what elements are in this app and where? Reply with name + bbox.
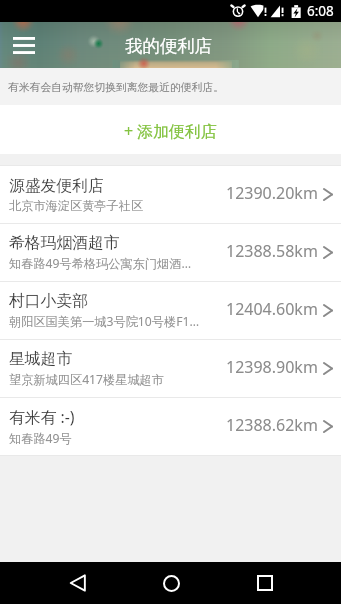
staticText: 希格玛烟酒超市 <box>9 233 120 253</box>
staticText: 我的便利店 <box>125 35 212 57</box>
staticText: 知春路49号希格玛公寓东门烟酒… <box>9 255 192 272</box>
staticText: 源盛发便利店 <box>9 176 104 196</box>
staticText: 北京市海淀区黄亭子社区 <box>9 198 144 213</box>
staticText: 有米有会自动帮您切换到离您最近的便利店。 <box>8 81 224 95</box>
staticText: 12388.62km <box>226 414 318 436</box>
staticText: 村口小卖部 <box>9 291 88 311</box>
staticText: 望京新城四区417楼星城超市 <box>9 371 164 388</box>
staticText: 6:08 <box>307 2 334 20</box>
staticText: 12398.90km <box>226 356 318 378</box>
button[interactable]: Recent apps <box>237 562 293 604</box>
button[interactable]: + 添加便利店 <box>100 106 241 154</box>
button[interactable]: Back <box>49 562 105 604</box>
button[interactable]: 源盛发便利店 <box>0 166 341 223</box>
staticText: 12388.58km <box>226 240 318 262</box>
staticText: 星城超市 <box>9 349 73 369</box>
button[interactable]: 有米有 :-) <box>0 398 341 455</box>
staticText: 知春路49号 <box>9 430 72 447</box>
button[interactable]: 星城超市 <box>0 340 341 397</box>
staticText: 12390.20km <box>226 182 318 204</box>
staticText: + 添加便利店 <box>124 120 217 142</box>
staticText: 有米有 :-) <box>9 406 75 428</box>
staticText: 12404.60km <box>226 298 318 320</box>
button[interactable]: Home <box>143 562 199 604</box>
staticText: 朝阳区国美第一城3号院10号楼F1… <box>9 313 200 330</box>
button[interactable]: Open navigation menu <box>0 22 48 68</box>
button[interactable]: 村口小卖部 <box>0 282 341 339</box>
button[interactable]: 希格玛烟酒超市 <box>0 224 341 281</box>
